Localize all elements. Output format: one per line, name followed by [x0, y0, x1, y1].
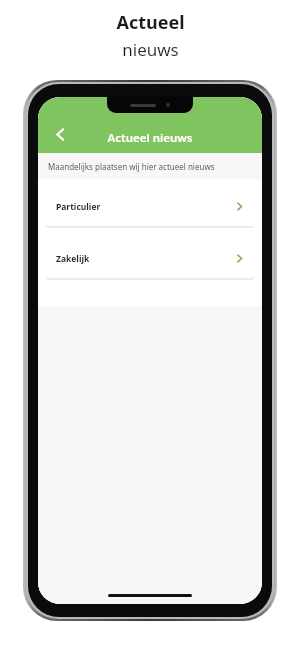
button[interactable]: Zakelijk: [46, 239, 254, 278]
staticText: Actueel: [116, 10, 185, 35]
staticText: Zakelijk: [56, 253, 235, 265]
staticText: Particulier: [56, 201, 235, 213]
button[interactable]: Back: [44, 118, 76, 150]
staticText: nieuws: [122, 38, 179, 61]
button[interactable]: Particulier: [46, 187, 254, 226]
staticText: Maandelijks plaatsen wij hier actueel ni…: [48, 161, 215, 172]
staticText: Actueel nieuws: [107, 130, 193, 146]
